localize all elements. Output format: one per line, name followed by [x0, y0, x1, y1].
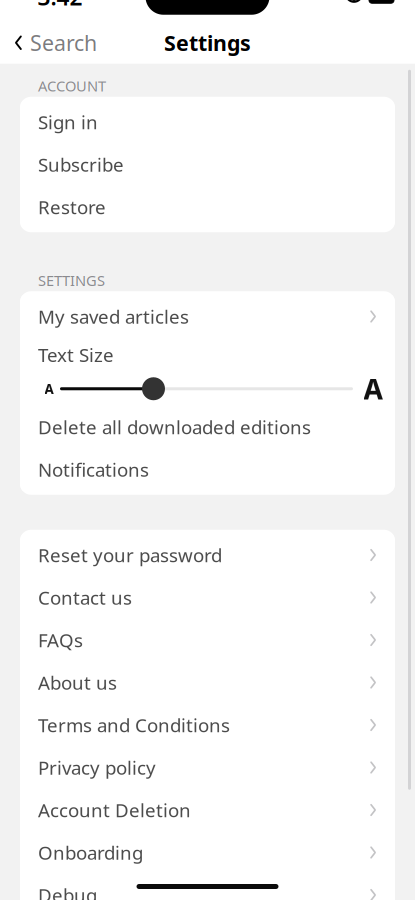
- button[interactable]: FAQs: [20, 619, 395, 661]
- button[interactable]: Debug: [20, 874, 395, 900]
- staticText: Settings: [164, 29, 251, 57]
- staticText: Account Deletion: [38, 798, 191, 822]
- staticText: ACCOUNT: [38, 76, 106, 95]
- button[interactable]: Onboarding: [20, 831, 395, 874]
- staticText: Onboarding: [38, 840, 143, 865]
- staticText: A: [363, 370, 382, 407]
- staticText: About us: [38, 670, 117, 695]
- button[interactable]: Restore: [20, 186, 395, 228]
- button[interactable]: Privacy policy: [20, 746, 395, 789]
- staticText: Delete all downloaded editions: [38, 415, 311, 439]
- staticText: Restore: [38, 195, 106, 219]
- button[interactable]: Terms and Conditions: [20, 704, 395, 746]
- staticText: Privacy policy: [38, 755, 156, 780]
- staticText: Text Size: [38, 342, 114, 367]
- staticText: Terms and Conditions: [38, 713, 230, 737]
- button[interactable]: Reset your password: [20, 534, 395, 576]
- staticText: 3:42: [37, 0, 82, 12]
- button[interactable]: Delete all downloaded editions: [20, 406, 395, 448]
- button[interactable]: Account Deletion: [20, 789, 395, 831]
- staticText: SETTINGS: [38, 270, 105, 290]
- staticText: Search: [30, 29, 97, 57]
- staticText: A: [44, 380, 53, 398]
- staticText: Debug: [38, 883, 97, 900]
- staticText: Reset your password: [38, 543, 222, 567]
- staticText: Contact us: [38, 585, 132, 610]
- staticText: Subscribe: [38, 152, 124, 177]
- button[interactable]: My saved articles: [20, 295, 395, 338]
- button[interactable]: Subscribe: [20, 143, 395, 186]
- button[interactable]: Sign in: [20, 101, 395, 143]
- staticText: Notifications: [38, 457, 149, 482]
- button[interactable]: Contact us: [20, 576, 395, 619]
- button[interactable]: Search: [0, 20, 97, 66]
- staticText: FAQs: [38, 628, 83, 652]
- staticText: My saved articles: [38, 304, 189, 329]
- button[interactable]: About us: [20, 661, 395, 704]
- button[interactable]: Notifications: [20, 448, 395, 491]
- staticText: Sign in: [38, 110, 98, 134]
